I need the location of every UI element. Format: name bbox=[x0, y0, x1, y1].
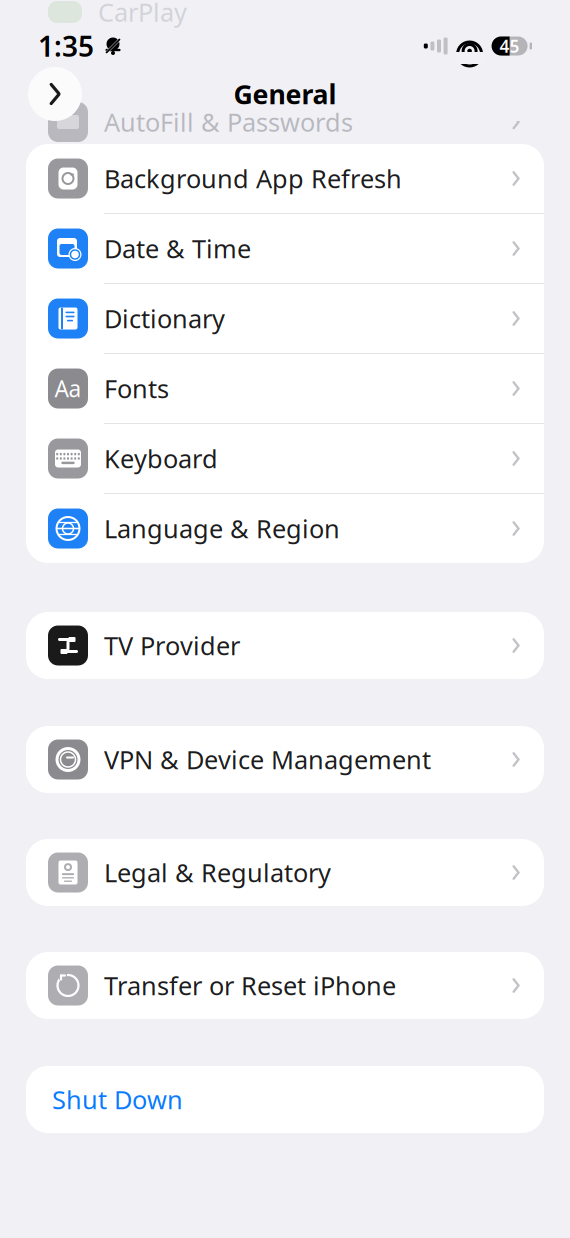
staticText: 45 bbox=[500, 34, 520, 57]
button[interactable]: Keyboard bbox=[26, 424, 544, 494]
staticText: AutoFill & Passwords bbox=[104, 105, 353, 139]
button[interactable]: Aa bbox=[26, 354, 544, 424]
staticText: Fonts bbox=[104, 372, 169, 405]
staticText: VPN & Device Management bbox=[104, 743, 431, 776]
staticText: Legal & Regulatory bbox=[104, 856, 331, 889]
button[interactable]: Back bbox=[28, 67, 82, 121]
button[interactable]: Background App Refresh bbox=[26, 144, 544, 214]
staticText: 1:35 bbox=[38, 27, 94, 65]
staticText: Transfer or Reset iPhone bbox=[104, 969, 396, 1002]
button[interactable]: Legal & Regulatory bbox=[26, 839, 544, 906]
staticText: Date & Time bbox=[104, 232, 251, 265]
staticText: General bbox=[233, 76, 336, 112]
button[interactable]: Transfer or Reset iPhone bbox=[26, 952, 544, 1019]
button[interactable]: TV Provider bbox=[26, 612, 544, 679]
staticText: Shut Down bbox=[52, 1083, 183, 1116]
staticText: Background App Refresh bbox=[104, 162, 402, 195]
staticText: CarPlay bbox=[98, 0, 187, 29]
button[interactable]: Dictionary bbox=[26, 284, 544, 354]
staticText: Language & Region bbox=[104, 512, 340, 545]
staticText: Aa bbox=[54, 373, 81, 403]
staticText: Dictionary bbox=[104, 302, 225, 335]
button[interactable]: Language & Region bbox=[26, 494, 544, 563]
staticText: TV Provider bbox=[104, 629, 240, 662]
button[interactable]: VPN & Device Management bbox=[26, 726, 544, 793]
button[interactable]: Shut Down bbox=[26, 1066, 544, 1133]
staticText: Keyboard bbox=[104, 442, 218, 475]
button[interactable]: Date & Time bbox=[26, 214, 544, 284]
